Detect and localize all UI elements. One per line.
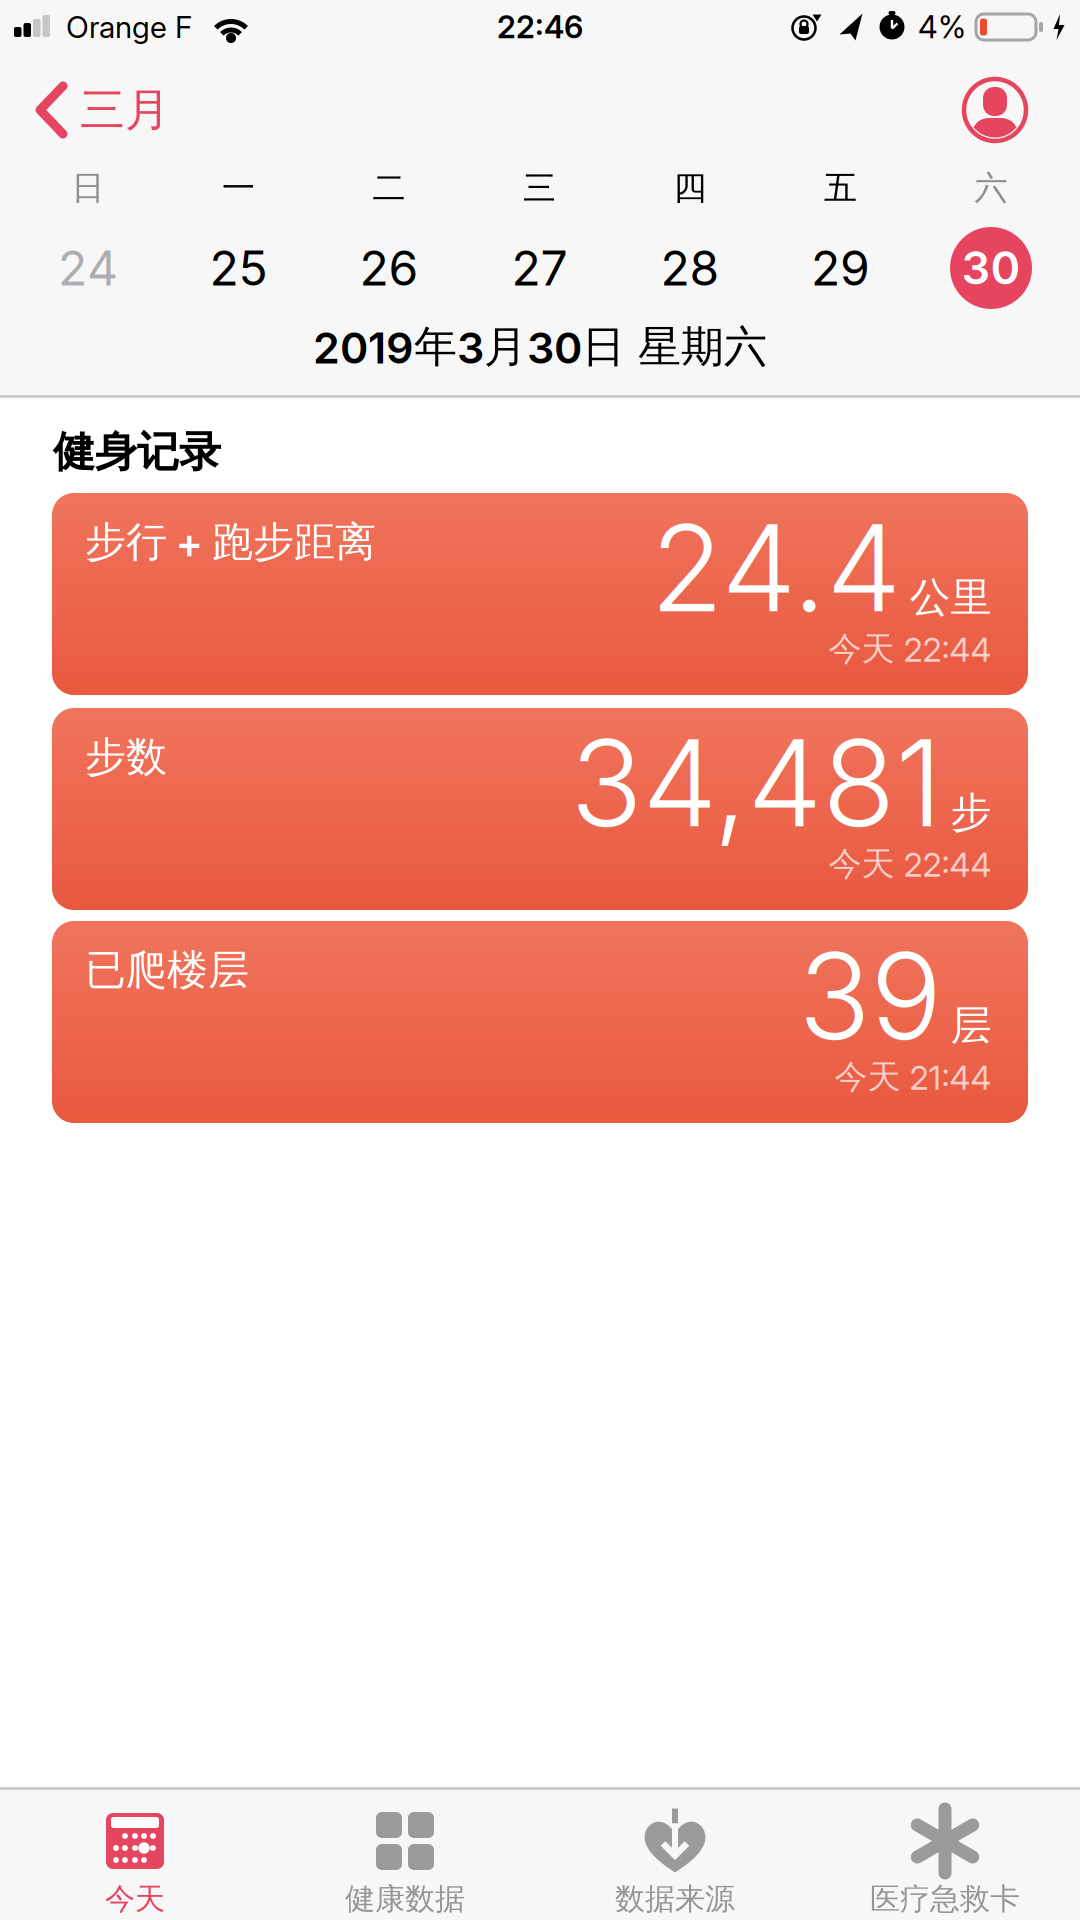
staticText: 今天 22:44 (828, 843, 991, 885)
staticText: 2019年3月30日 星期六 (313, 320, 767, 374)
button[interactable]: 24 (38, 223, 138, 313)
staticText: 4% (918, 8, 966, 46)
staticText: 数据来源 (615, 1880, 735, 1918)
button[interactable]: 健康数据 (338, 1790, 472, 1920)
staticText: 26 (359, 239, 418, 297)
button[interactable]: 已爬楼层 (52, 921, 1028, 1123)
staticText: 已爬楼层 (85, 944, 249, 996)
staticText: 步数 (85, 731, 167, 783)
staticText: 四 (673, 167, 706, 209)
button[interactable]: 27 (489, 223, 589, 313)
staticText: 今天 21:44 (834, 1056, 991, 1098)
button[interactable]: 25 (188, 223, 288, 313)
staticText: 24 (58, 239, 118, 297)
staticText: 22:46 (497, 8, 583, 46)
staticText: 健身记录 (53, 425, 221, 478)
staticText: Orange F (66, 9, 192, 45)
button[interactable]: 步数 (52, 708, 1028, 910)
staticText: 三月 (80, 82, 170, 138)
button[interactable]: 医疗急救卡 (878, 1790, 1012, 1920)
staticText: 今天 (105, 1880, 165, 1918)
staticText: 25 (209, 239, 267, 297)
staticText: 层 (950, 1000, 991, 1051)
staticText: 28 (660, 239, 719, 297)
staticText: 一 (222, 167, 255, 209)
button[interactable]: 30 (946, 223, 1036, 313)
staticText: 三 (523, 167, 556, 209)
button[interactable]: 26 (339, 223, 439, 313)
button[interactable]: 数据来源 (608, 1790, 742, 1920)
staticText: 医疗急救卡 (870, 1880, 1020, 1918)
staticText: 二 (372, 167, 405, 209)
staticText: 今天 22:44 (828, 628, 991, 670)
staticText: 39 (798, 924, 942, 1068)
button[interactable]: 个人资料 (962, 77, 1028, 143)
button[interactable]: 返回三月 (0, 70, 210, 150)
staticText: 30 (961, 241, 1020, 295)
button[interactable]: 步行 + 跑步距离 (52, 493, 1028, 695)
button[interactable]: 28 (640, 223, 740, 313)
staticText: 六 (974, 167, 1007, 209)
button[interactable]: 今天 (68, 1790, 202, 1920)
staticText: 34,481 (570, 711, 942, 855)
staticText: 27 (511, 239, 567, 297)
staticText: 公里 (909, 572, 991, 623)
staticText: 日 (71, 167, 104, 209)
staticText: 29 (811, 239, 870, 297)
staticText: 24.4 (650, 496, 901, 640)
staticText: 步 (950, 787, 991, 838)
staticText: 五 (824, 167, 857, 209)
button[interactable]: 29 (790, 223, 890, 313)
staticText: 步行 + 跑步距离 (85, 516, 376, 568)
staticText: 健康数据 (345, 1880, 465, 1918)
